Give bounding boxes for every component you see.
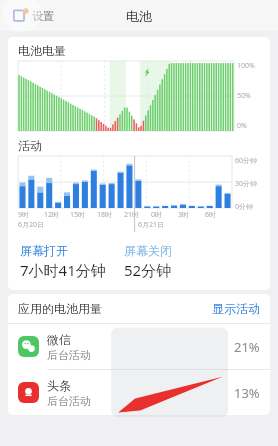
staticText: 头条 xyxy=(47,378,71,393)
staticText: 活动 xyxy=(18,138,42,153)
button[interactable]: 头条 xyxy=(8,370,270,415)
staticText: 电池 xyxy=(126,8,152,24)
staticText: 0% xyxy=(237,121,247,131)
staticText: 后台活动 xyxy=(47,394,91,408)
staticText: 21时 xyxy=(124,210,140,220)
staticText: 7小时41分钟 xyxy=(20,260,106,280)
staticText: 微信 xyxy=(47,332,71,347)
staticText: 0分钟 xyxy=(235,202,254,212)
staticText: 屏幕关闭 xyxy=(124,243,172,258)
staticText: 后台活动 xyxy=(47,348,91,362)
staticText: 电池电量 xyxy=(18,43,66,58)
staticText: 6月20日 xyxy=(18,220,45,230)
staticText: 13% xyxy=(234,384,260,402)
staticText: 60分钟 xyxy=(235,156,258,166)
staticText: 屏幕打开 xyxy=(20,243,68,258)
button[interactable]: 应用的电池用量 xyxy=(8,294,270,323)
staticText: 应用的电池用量 xyxy=(18,301,102,316)
staticText: 9时 xyxy=(18,210,30,220)
staticText: 0时 xyxy=(151,210,163,220)
staticText: 12时 xyxy=(44,210,60,220)
staticText: 6月21日 xyxy=(138,220,165,230)
button[interactable]: 返回设置 xyxy=(13,7,54,24)
staticText: 50% xyxy=(237,91,251,101)
button[interactable]: 微信 xyxy=(8,324,270,369)
staticText: 设置 xyxy=(32,9,54,23)
staticText: 21% xyxy=(234,338,260,356)
staticText: 6时 xyxy=(205,210,217,220)
staticText: 30分钟 xyxy=(235,179,258,189)
staticText: 3时 xyxy=(178,210,190,220)
staticText: 显示活动 xyxy=(212,301,260,316)
staticText: 15时 xyxy=(70,210,86,220)
staticText: 18时 xyxy=(97,210,113,220)
staticText: 100% xyxy=(237,61,255,71)
staticText: 52分钟 xyxy=(124,260,172,280)
